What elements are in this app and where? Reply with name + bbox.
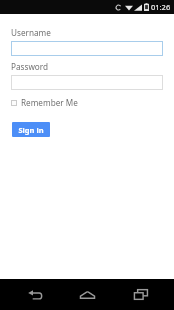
button[interactable] [11,41,163,56]
staticText: Password [11,61,49,72]
button[interactable]: Sign in [12,122,50,137]
button[interactable]: Recent apps [121,279,161,310]
staticText: Sign in [18,125,44,135]
staticText: 01:26 [151,2,171,12]
button[interactable]: Remember Me [11,96,78,109]
staticText: Username [11,27,51,38]
staticText: Remember Me [21,97,78,108]
button[interactable]: Back [14,279,54,310]
button[interactable]: Home [67,279,107,310]
button[interactable] [11,75,163,90]
